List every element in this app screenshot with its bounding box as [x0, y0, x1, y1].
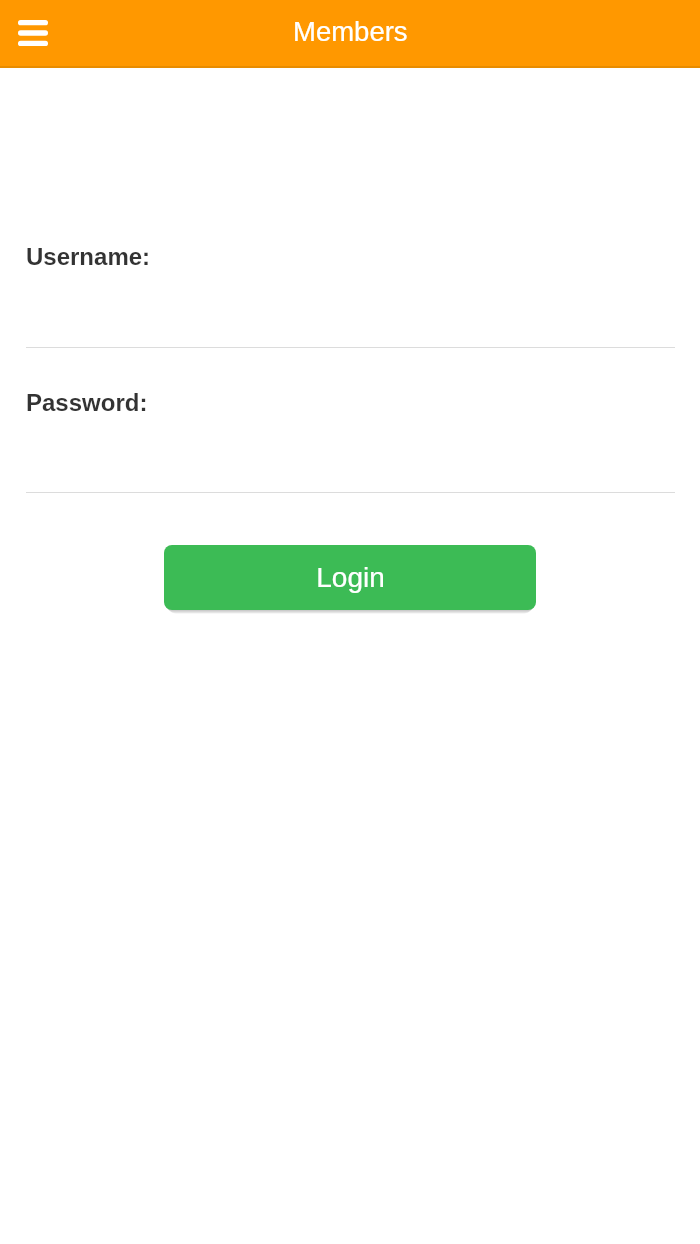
- button[interactable]: Open navigation menu: [3, 3, 63, 63]
- staticText: Login: [316, 562, 385, 593]
- button[interactable]: Username input field: [26, 270, 675, 348]
- staticText: Username:: [26, 243, 151, 270]
- staticText: Password:: [26, 389, 148, 416]
- button[interactable]: Password input field: [26, 416, 675, 493]
- button[interactable]: Login: [164, 545, 536, 610]
- staticText: Members: [293, 16, 408, 47]
